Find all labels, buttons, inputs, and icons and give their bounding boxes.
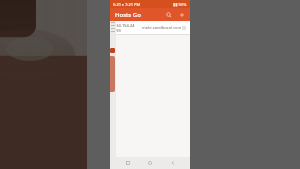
button[interactable]: Back <box>168 158 178 168</box>
button[interactable]: Recents <box>123 158 133 168</box>
staticText: Hosts Go <box>115 11 141 19</box>
button[interactable]: Home <box>145 158 155 168</box>
button[interactable]: 134.154.249. <box>110 21 190 35</box>
staticText: 5:21 ▸ 7:21 PM <box>113 2 141 7</box>
button[interactable]: Search <box>163 9 174 20</box>
staticText: ▮▮ 93% <box>173 2 187 7</box>
staticText: 193 <box>114 28 121 33</box>
button[interactable]: Add <box>110 48 115 53</box>
staticText: mobi.sandboxol.com <box>142 25 182 30</box>
button[interactable]: Add host <box>176 9 187 20</box>
staticText: 134.154.249. <box>114 23 136 28</box>
button[interactable]: Toggle entry <box>182 26 186 30</box>
